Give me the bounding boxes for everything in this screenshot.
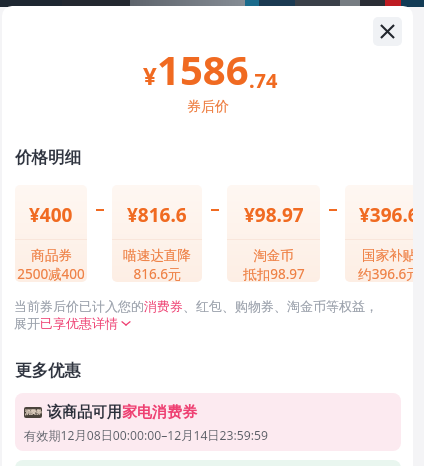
staticText: 该商品可用家电消费券 xyxy=(47,403,197,422)
staticText: 抵扣98.97 xyxy=(243,265,305,282)
button[interactable]: ¥816.6 xyxy=(112,185,202,282)
staticText: 国家补贴 xyxy=(362,247,413,264)
staticText: ¥396.6 xyxy=(359,202,413,228)
button[interactable]: 展开已享优惠详情 xyxy=(14,315,131,331)
staticText: 商品券 xyxy=(31,247,72,264)
staticText: 更多优惠 xyxy=(15,360,81,381)
staticText: 2500减400 xyxy=(17,265,85,282)
staticText: 1586 xyxy=(157,42,249,96)
staticText: .74 xyxy=(249,67,278,94)
staticText: 当前券后价已计入您的消费券、红包、购物券、淘金币等权益， xyxy=(14,298,378,314)
staticText: 消费券 xyxy=(25,409,42,416)
staticText: 816.6元 xyxy=(133,265,182,282)
staticText: ¥ xyxy=(143,59,157,92)
staticText: 约396.6元 xyxy=(358,265,413,282)
staticText: 展开已享优惠详情 xyxy=(14,315,118,331)
button[interactable]: Close xyxy=(373,17,402,46)
staticText: 有效期12月08日00:00:00–12月14日23:59:59 xyxy=(24,427,268,444)
button[interactable]: 消费券 xyxy=(15,393,401,451)
staticText: 价格明细 xyxy=(15,147,81,168)
staticText: 淘金币 xyxy=(253,247,294,264)
button[interactable]: ¥396.6 xyxy=(345,185,413,282)
button[interactable]: ¥98.97 xyxy=(227,185,320,282)
staticText: 券后价 xyxy=(187,98,229,116)
button[interactable]: ¥400 xyxy=(15,185,87,282)
staticText: ¥98.97 xyxy=(244,202,304,228)
staticText: ¥816.6 xyxy=(127,202,187,228)
staticText: 喵速达直降 xyxy=(123,247,191,264)
staticText: ¥400 xyxy=(29,202,73,228)
